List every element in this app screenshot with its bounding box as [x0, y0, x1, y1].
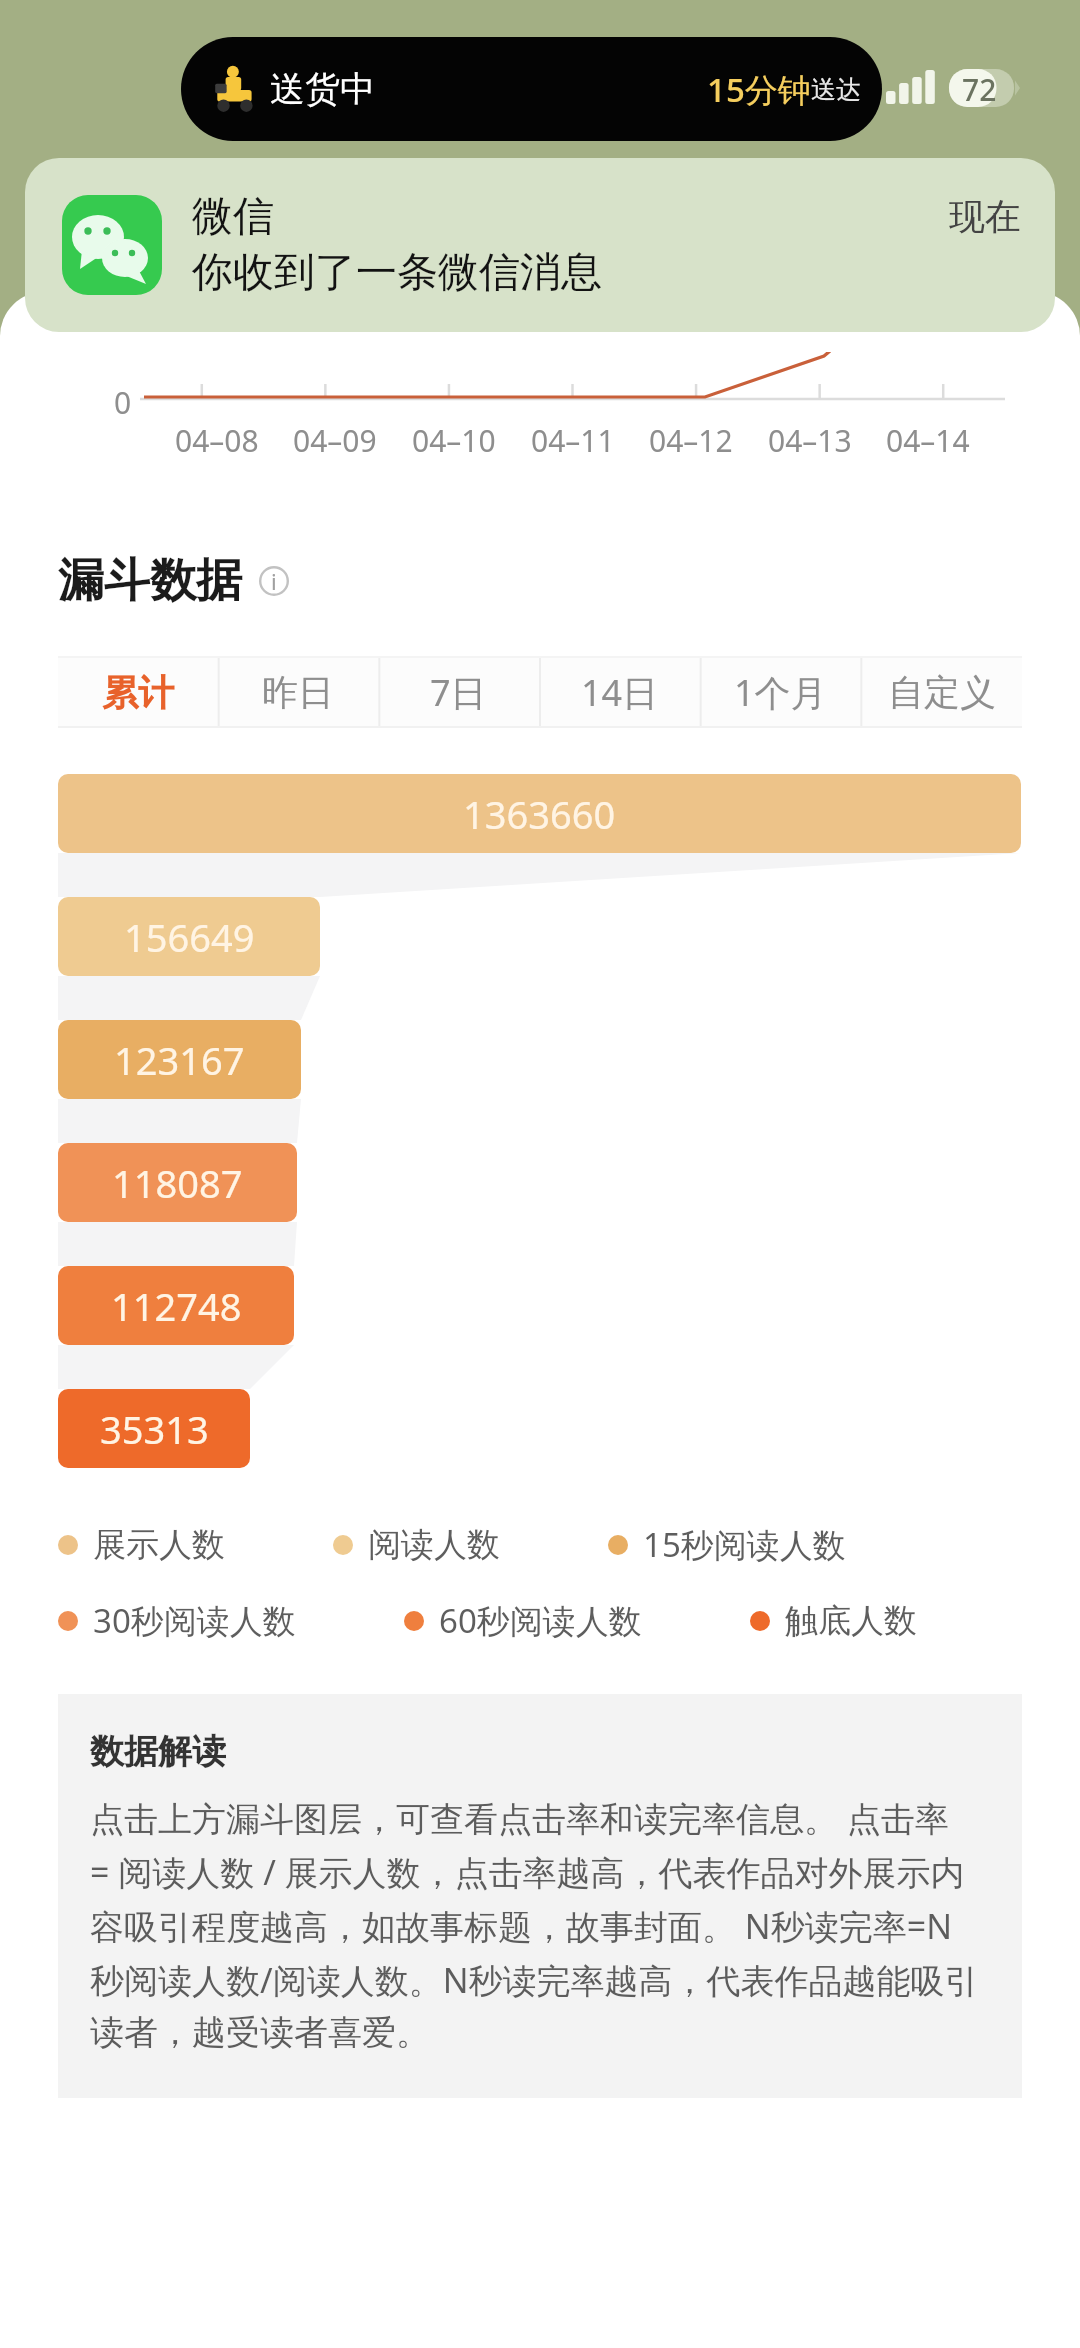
button[interactable]: 触底人数: [750, 1600, 917, 1642]
staticText: 展示人数: [93, 1524, 225, 1566]
button[interactable]: 35313: [58, 1389, 250, 1468]
staticText: 点击上方漏斗图层，可查看点击率和读完率信息。 点击率: [90, 1795, 972, 1841]
staticText: 04–10: [412, 420, 496, 461]
staticText: 漏斗数据: [58, 552, 242, 610]
staticText: 60秒阅读人数: [439, 1598, 642, 1643]
staticText: 秒阅读人数/阅读人数。N秒读完率越高，代表作品越能吸引: [90, 1957, 972, 2003]
button[interactable]: 156649: [58, 897, 320, 976]
button[interactable]: 1363660: [58, 774, 1021, 853]
staticText: 123167: [114, 1034, 245, 1086]
staticText: 72: [962, 69, 997, 107]
button[interactable]: 配送: [181, 37, 882, 141]
staticText: 阅读人数: [368, 1524, 500, 1566]
button[interactable]: 123167: [58, 1020, 301, 1099]
button[interactable]: 说明: [259, 566, 289, 596]
staticText: 14日: [581, 668, 659, 717]
staticText: 送货中: [270, 67, 375, 111]
button[interactable]: 14日: [539, 656, 700, 728]
staticText: 04–12: [649, 420, 733, 461]
staticText: 15秒阅读人数: [643, 1522, 846, 1567]
staticText: 30秒阅读人数: [93, 1598, 296, 1643]
staticText: 你收到了一条微信消息: [192, 247, 602, 299]
button[interactable]: 累计: [58, 656, 218, 728]
button[interactable]: 7日: [378, 656, 539, 728]
staticText: 昨日: [262, 670, 334, 715]
staticText: i: [271, 566, 277, 596]
staticText: 04–13: [768, 420, 852, 461]
staticText: = 阅读人数 / 展示人数，点击率越高，代表作品对外展示内: [90, 1849, 972, 1895]
button[interactable]: 阅读人数: [333, 1524, 500, 1566]
button[interactable]: 1个月: [700, 656, 861, 728]
staticText: 读者，越受读者喜爱。: [90, 2011, 972, 2054]
button[interactable]: 微信: [25, 158, 1055, 332]
staticText: 04–08: [175, 420, 259, 461]
button[interactable]: 15秒阅读人数: [608, 1522, 846, 1567]
staticText: 35313: [100, 1403, 209, 1455]
staticText: 04–14: [886, 420, 970, 461]
staticText: 04–11: [531, 420, 615, 461]
button[interactable]: 30秒阅读人数: [58, 1598, 296, 1643]
button[interactable]: 自定义: [861, 656, 1022, 728]
staticText: 微信: [192, 191, 274, 243]
button[interactable]: 112748: [58, 1266, 294, 1345]
other: 配送: [210, 63, 262, 115]
staticText: 现在: [949, 194, 1021, 239]
staticText: 累计: [102, 670, 174, 715]
staticText: 数据解读: [90, 1730, 226, 1773]
staticText: 156649: [124, 911, 255, 963]
staticText: 118087: [112, 1157, 243, 1209]
staticText: 1363660: [463, 788, 616, 840]
staticText: 送达: [811, 74, 861, 105]
staticText: 1个月: [734, 668, 827, 717]
button[interactable]: 昨日: [218, 656, 378, 728]
staticText: 容吸引程度越高，如故事标题，故事封面。 N秒读完率=N: [90, 1903, 972, 1949]
button[interactable]: 118087: [58, 1143, 297, 1222]
staticText: 触底人数: [785, 1600, 917, 1642]
staticText: 04–09: [293, 420, 377, 461]
staticText: 0: [114, 382, 132, 423]
staticText: 112748: [111, 1280, 242, 1332]
button[interactable]: 60秒阅读人数: [404, 1598, 642, 1643]
staticText: 7日: [430, 668, 487, 717]
button[interactable]: 展示人数: [58, 1524, 225, 1566]
staticText: 15分钟: [707, 67, 811, 112]
staticText: 自定义: [888, 670, 996, 715]
